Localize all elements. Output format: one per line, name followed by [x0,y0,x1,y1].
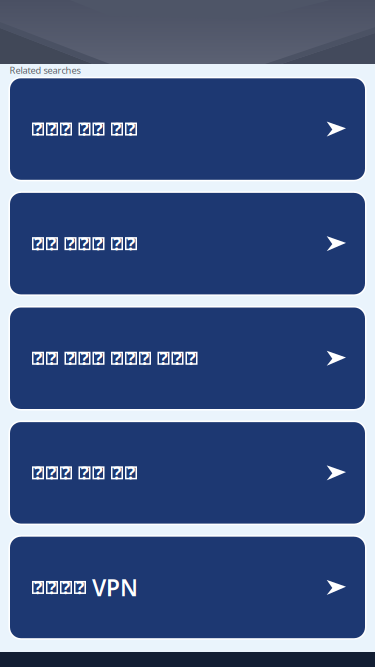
staticText: VPN [92,572,138,602]
staticText: ? [48,347,56,370]
staticText: ? [141,347,149,370]
staticText: ? [66,347,74,370]
staticText: ? [34,232,42,255]
staticText: ? [127,461,135,484]
staticText: ? [173,347,181,370]
button[interactable]: ? [8,306,366,410]
staticText: ? [127,117,135,140]
button[interactable]: ? [8,191,366,296]
staticText: ? [94,232,102,255]
staticText: ? [34,461,42,484]
staticText: ? [159,347,167,370]
staticText: ? [127,347,135,370]
staticText: ? [48,117,56,140]
staticText: ? [94,347,102,370]
button[interactable]: ? [8,421,366,525]
staticText: ? [62,461,70,484]
staticText: ? [113,461,121,484]
staticText: ? [80,232,88,255]
staticText: ? [113,232,121,255]
staticText: ? [62,117,70,140]
staticText: ? [48,232,56,255]
staticText: ? [113,117,121,140]
staticText: ? [94,461,102,484]
button[interactable]: ? [8,535,366,640]
staticText: ? [187,347,195,370]
staticText: ? [94,117,102,140]
staticText: ? [66,232,74,255]
button[interactable]: ? [8,77,366,181]
staticText: ? [113,347,121,370]
staticText: ? [80,347,88,370]
staticText: ? [76,576,84,599]
staticText: ? [34,576,42,599]
staticText: ? [34,347,42,370]
staticText: ? [62,576,70,599]
staticText: ? [80,461,88,484]
staticText: ? [48,576,56,599]
staticText: ? [127,232,135,255]
staticText: ? [34,117,42,140]
staticText: Related searches [9,64,80,76]
staticText: ? [80,117,88,140]
staticText: ? [48,461,56,484]
